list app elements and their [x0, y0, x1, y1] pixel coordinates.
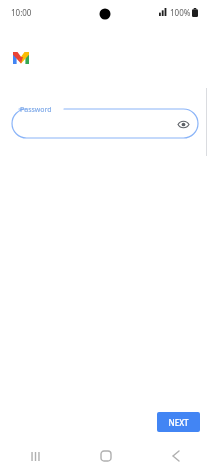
- staticText: 10:00: [11, 7, 32, 18]
- button[interactable]: Recents: [0, 442, 71, 470]
- staticText: Password: [20, 105, 52, 115]
- staticText: NEXT: [168, 417, 189, 428]
- button[interactable]: NEXT: [157, 412, 200, 432]
- button[interactable]: Home: [71, 442, 141, 470]
- staticText: 100%: [170, 7, 191, 18]
- button[interactable]: Show password: [176, 117, 190, 131]
- button[interactable]: Back: [141, 442, 211, 470]
- button[interactable]: Password: [12, 109, 198, 138]
